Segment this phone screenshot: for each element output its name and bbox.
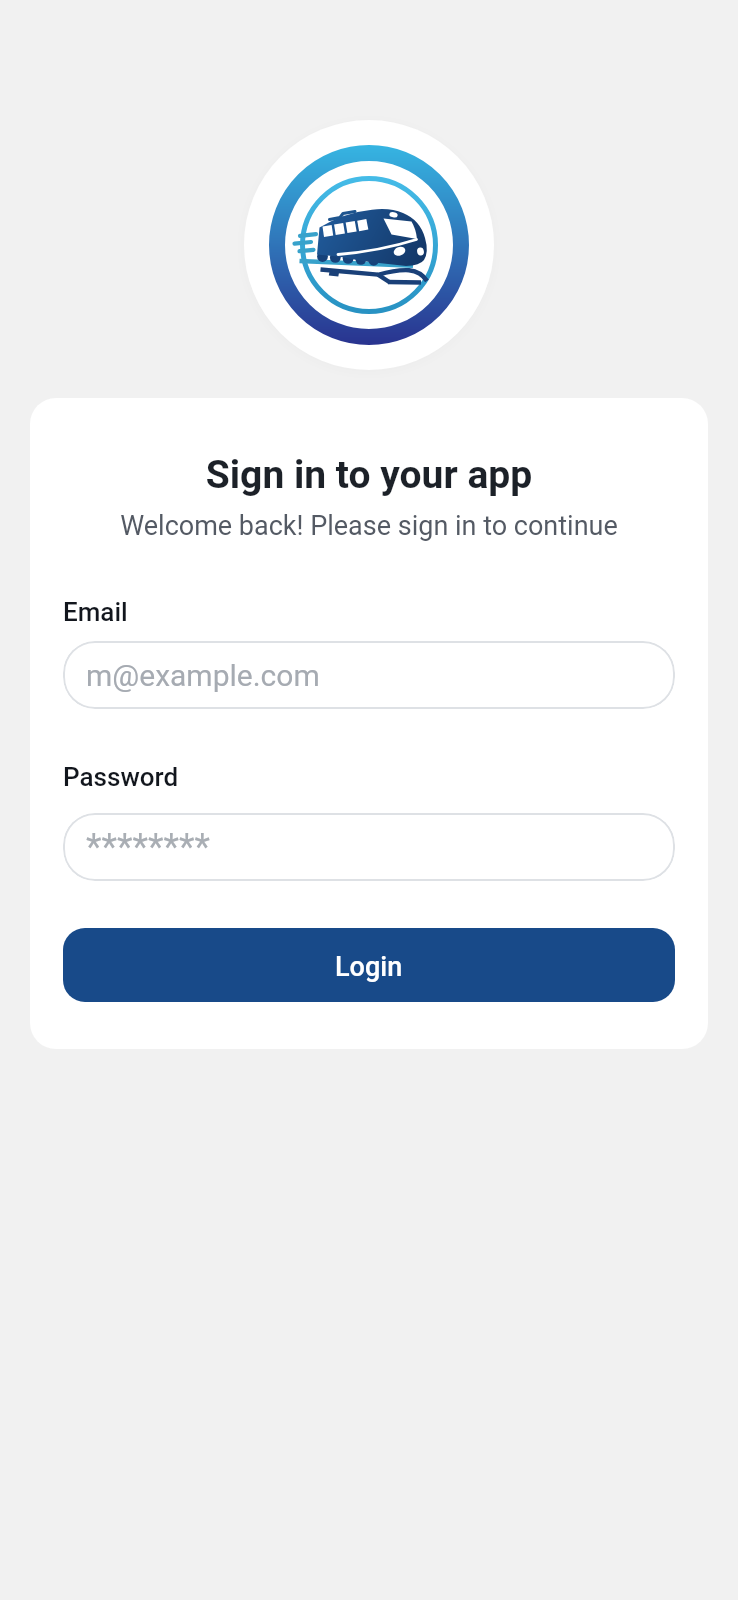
staticText: Login — [335, 951, 403, 983]
staticText: Sign in to your app — [63, 452, 675, 498]
staticText: Welcome back! Please sign in to continue — [63, 510, 675, 542]
staticText: ******** — [86, 826, 211, 868]
staticText: Password — [63, 762, 179, 792]
staticText: m@example.com — [86, 658, 320, 693]
button[interactable]: Login — [63, 928, 675, 1002]
staticText: Email — [63, 597, 128, 627]
button[interactable]: ******** — [63, 813, 675, 881]
button[interactable]: m@example.com — [63, 641, 675, 709]
